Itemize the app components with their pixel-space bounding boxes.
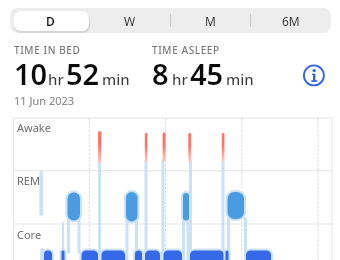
staticText: Core	[17, 227, 42, 242]
staticText: W	[124, 13, 136, 29]
staticText: 11 Jun 2023	[14, 93, 75, 108]
staticText: min	[226, 69, 254, 89]
staticText: 10	[14, 54, 48, 93]
staticText: 52	[66, 54, 100, 93]
staticText: Awake	[17, 120, 51, 135]
staticText: D	[46, 13, 55, 29]
staticText: 45	[190, 54, 224, 93]
staticText: REM	[17, 173, 40, 188]
staticText: TIME IN BED	[14, 43, 81, 57]
staticText: TIME ASLEEP	[152, 43, 220, 57]
staticText: min	[102, 69, 130, 89]
staticText: M	[205, 13, 216, 29]
staticText: 6M	[282, 13, 300, 29]
staticText: hr	[172, 69, 188, 89]
staticText: hr	[48, 69, 64, 89]
staticText: 8	[152, 54, 169, 93]
